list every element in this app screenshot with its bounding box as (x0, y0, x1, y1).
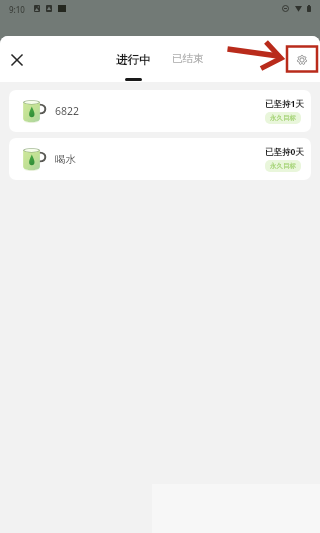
button[interactable]: Close (5, 48, 29, 72)
button[interactable]: 6822 (9, 90, 311, 132)
staticText: 进行中 (116, 53, 151, 67)
staticText: 6822 (55, 104, 80, 118)
button[interactable]: 已结束 (170, 36, 206, 82)
staticText: 9:10 (9, 4, 25, 15)
staticText: 已结束 (172, 52, 204, 65)
staticText: 永久目标 (270, 114, 296, 122)
staticText: 已坚持0天 (265, 146, 304, 158)
button[interactable]: 喝水 (9, 138, 311, 180)
staticText: 喝水 (55, 153, 76, 166)
button[interactable]: Settings (290, 48, 313, 71)
staticText: 永久目标 (270, 162, 296, 170)
staticText: 已坚持1天 (265, 98, 304, 110)
button[interactable]: 进行中 (114, 36, 152, 82)
